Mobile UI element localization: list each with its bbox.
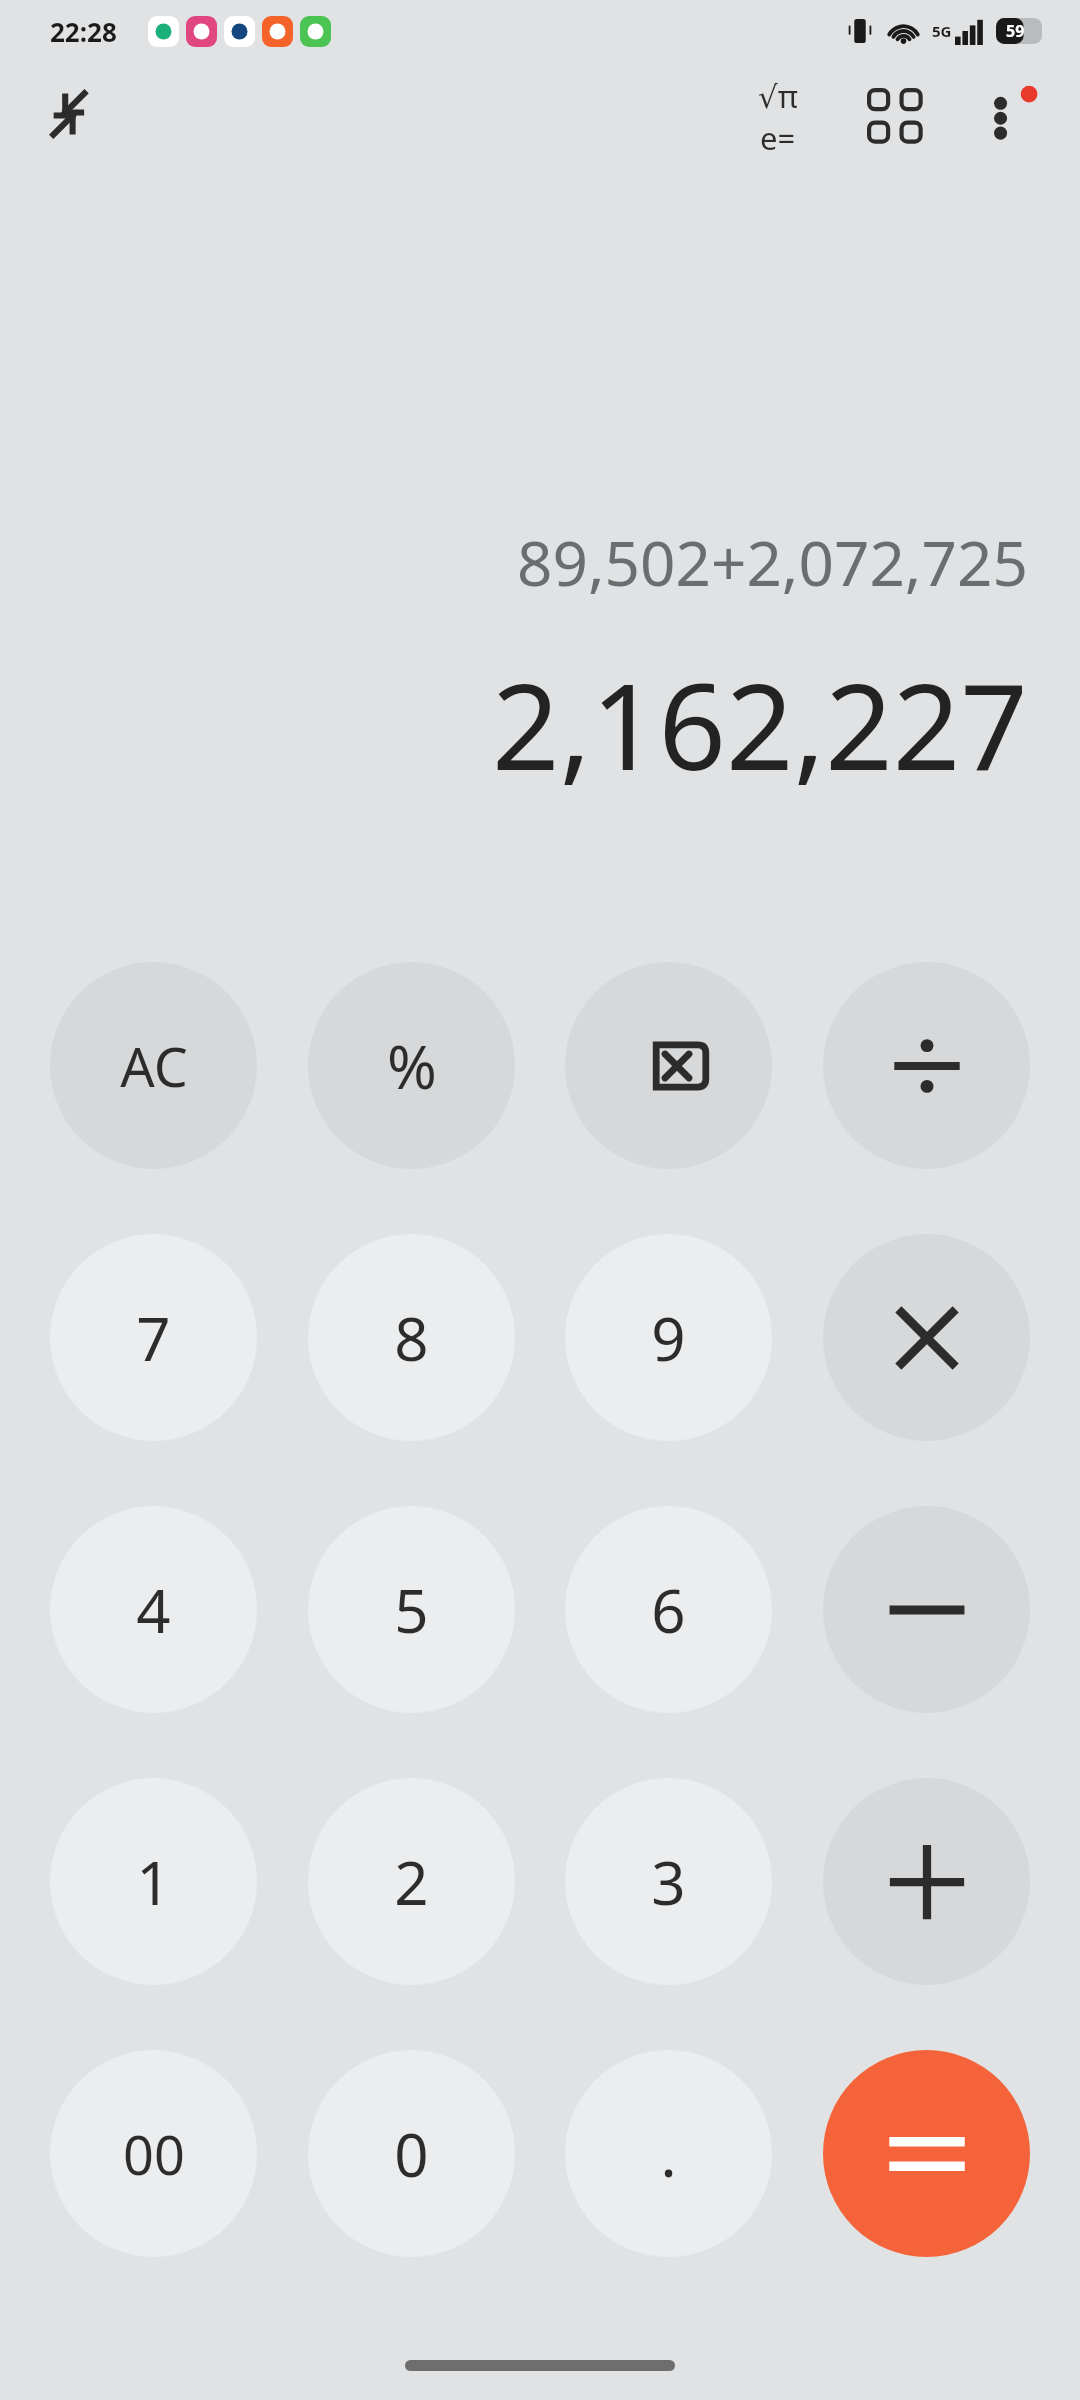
button[interactable]: Unit converter bbox=[844, 65, 948, 169]
staticText: 2 bbox=[394, 1841, 429, 1923]
staticText: 00 bbox=[123, 2117, 185, 2191]
button[interactable]: 5 bbox=[308, 1506, 515, 1713]
button[interactable]: 1 bbox=[50, 1778, 257, 1985]
button[interactable]: . bbox=[565, 2050, 772, 2257]
staticText: 2,162,227 bbox=[492, 644, 1028, 805]
staticText: 1 bbox=[136, 1841, 171, 1923]
staticText: 7 bbox=[136, 1297, 171, 1379]
staticText: e= bbox=[760, 117, 796, 159]
staticText: 6 bbox=[651, 1569, 686, 1651]
button[interactable]: Backspace bbox=[565, 962, 772, 1169]
button[interactable]: Subtract bbox=[823, 1506, 1030, 1713]
button[interactable]: 7 bbox=[50, 1234, 257, 1441]
staticText: . bbox=[660, 2113, 677, 2195]
staticText: 3 bbox=[651, 1841, 686, 1923]
staticText: 8 bbox=[394, 1297, 429, 1379]
button[interactable]: 2 bbox=[308, 1778, 515, 1985]
staticText: 22:28 bbox=[50, 14, 117, 49]
staticText: % bbox=[387, 1025, 437, 1107]
button[interactable]: Scientific mode bbox=[726, 65, 830, 169]
staticText: 5 bbox=[394, 1569, 429, 1651]
staticText: 5G bbox=[932, 21, 952, 41]
staticText: √π bbox=[758, 75, 798, 117]
staticText: 59 bbox=[1006, 20, 1025, 42]
staticText: 89,502+2,072,725 bbox=[517, 520, 1028, 604]
button[interactable]: 0 bbox=[308, 2050, 515, 2257]
button[interactable]: Multiply bbox=[823, 1234, 1030, 1441]
button[interactable]: 4 bbox=[50, 1506, 257, 1713]
staticText: 9 bbox=[651, 1297, 686, 1379]
button[interactable]: 9 bbox=[565, 1234, 772, 1441]
button[interactable]: 8 bbox=[308, 1234, 515, 1441]
button[interactable]: Add bbox=[823, 1778, 1030, 1985]
button[interactable]: 3 bbox=[565, 1778, 772, 1985]
button[interactable]: Divide bbox=[823, 962, 1030, 1169]
button[interactable]: AC bbox=[50, 962, 257, 1169]
staticText: 4 bbox=[136, 1569, 171, 1651]
button[interactable]: 6 bbox=[565, 1506, 772, 1713]
button[interactable]: % bbox=[308, 962, 515, 1169]
staticText: 0 bbox=[394, 2113, 429, 2195]
button[interactable]: Collapse bbox=[30, 67, 130, 167]
button[interactable]: 00 bbox=[50, 2050, 257, 2257]
button[interactable]: More options bbox=[958, 67, 1058, 167]
staticText: AC bbox=[120, 1029, 188, 1103]
button[interactable]: Equals bbox=[823, 2050, 1030, 2257]
